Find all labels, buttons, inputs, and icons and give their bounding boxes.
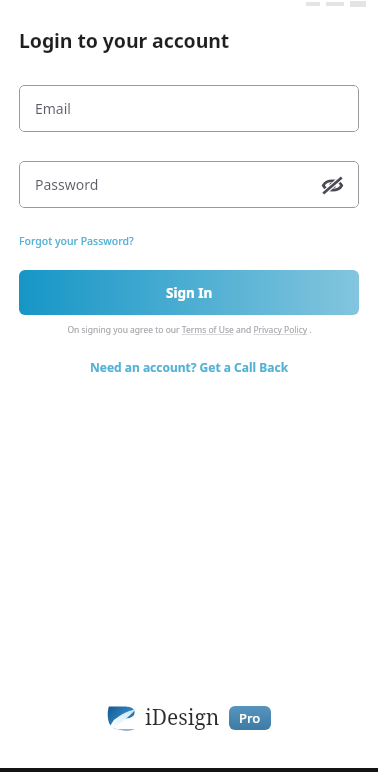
staticText: Forgot your Password? [19, 234, 134, 248]
button[interactable]: Forgot your Password? [19, 234, 134, 248]
button[interactable]: Show password [317, 170, 347, 200]
button[interactable]: Sign In [19, 270, 359, 315]
staticText: iDesign [145, 703, 220, 732]
staticText: Sign In [166, 284, 213, 302]
staticText: Password [35, 175, 99, 194]
staticText: Login to your account [19, 27, 230, 54]
staticText: Email [35, 99, 71, 118]
button[interactable]: Need an account? Get a Call Back [90, 359, 289, 375]
staticText: On signing you agree to our Terms of Use… [67, 324, 312, 336]
staticText: Pro [239, 709, 261, 727]
button[interactable]: Email [19, 85, 359, 132]
button[interactable]: Password [19, 161, 359, 208]
staticText: Need an account? Get a Call Back [90, 359, 289, 375]
